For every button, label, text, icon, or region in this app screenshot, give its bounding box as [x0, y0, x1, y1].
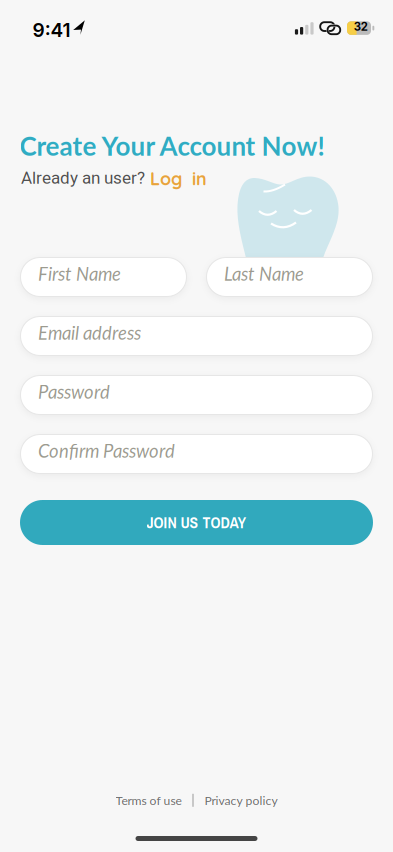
- button[interactable]: JOIN US TODAY: [20, 500, 373, 545]
- staticText: Confirm Password: [38, 440, 175, 462]
- textField[interactable]: Email address: [38, 322, 373, 344]
- staticText: Already an user?: [21, 168, 145, 188]
- staticText: Create Your Account Now!: [19, 130, 324, 161]
- staticText: Terms of use: [115, 793, 181, 808]
- staticText: First Name: [38, 263, 121, 285]
- staticText: Log in: [150, 167, 207, 190]
- button[interactable]: Privacy policy: [204, 793, 277, 808]
- staticText: Privacy policy: [204, 793, 277, 808]
- staticText: Last Name: [224, 263, 304, 285]
- button[interactable]: Terms of use: [115, 793, 181, 808]
- staticText: Email address: [38, 322, 141, 344]
- secureTextField[interactable]: Confirm Password: [38, 440, 373, 462]
- staticText: 9:41: [32, 18, 70, 42]
- button[interactable]: Log in: [150, 168, 212, 189]
- staticText: JOIN US TODAY: [146, 512, 246, 533]
- staticText: 32: [354, 20, 368, 33]
- secureTextField[interactable]: Password: [38, 381, 373, 403]
- textField[interactable]: First Name: [38, 263, 187, 285]
- staticText: Password: [38, 381, 110, 403]
- textField[interactable]: Last Name: [224, 263, 373, 285]
